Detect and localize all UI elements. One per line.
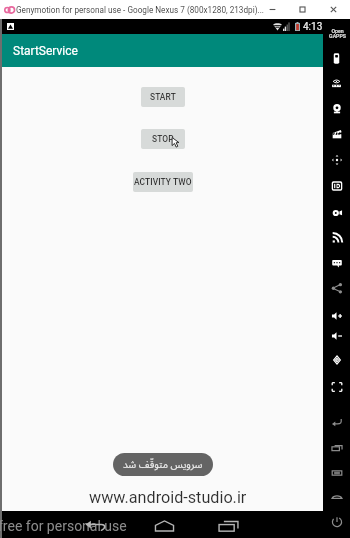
staticText: www.android-studio.ir	[89, 488, 247, 507]
button[interactable]: Move	[323, 148, 350, 172]
button[interactable]: Recent apps	[213, 511, 243, 538]
staticText: Genymotion for personal use - Google Nex…	[16, 5, 264, 15]
staticText: StartService	[13, 44, 78, 58]
button[interactable]: Close	[321, 0, 346, 19]
button[interactable]: START	[141, 87, 185, 107]
staticText: free for personal use	[0, 518, 127, 534]
button[interactable]: Battery	[323, 46, 350, 70]
button[interactable]: Share	[323, 276, 350, 300]
button[interactable]: Back	[80, 511, 110, 538]
button[interactable]: Menu	[323, 461, 350, 485]
button[interactable]: Network	[323, 226, 350, 250]
button[interactable]: ACTIVITY TWO	[133, 172, 193, 192]
button[interactable]: Fullscreen	[323, 375, 350, 399]
staticText: STOP	[152, 134, 174, 144]
button[interactable]: Volume down	[323, 324, 350, 348]
button[interactable]: Recents	[323, 436, 350, 460]
button[interactable]: Rotate	[323, 348, 350, 372]
button[interactable]: Identifiers	[323, 174, 350, 198]
button[interactable]: Screen record	[323, 122, 350, 146]
button[interactable]: Home	[149, 511, 179, 538]
staticText: START	[150, 92, 176, 102]
button[interactable]: Maximize	[290, 0, 315, 19]
button[interactable]: SMS	[323, 251, 350, 275]
staticText: Open GAPPS	[329, 28, 346, 39]
button[interactable]: Back	[323, 410, 350, 434]
button[interactable]: Volume up	[323, 304, 350, 328]
button[interactable]: Power	[323, 510, 350, 534]
staticText: ACTIVITY TWO	[134, 177, 192, 187]
button[interactable]: Video	[323, 201, 350, 225]
button[interactable]: STOP	[141, 129, 185, 149]
staticText: سرویس متوقّف شد	[123, 454, 203, 475]
button[interactable]: Home	[323, 485, 350, 509]
button[interactable]: Camera	[323, 97, 350, 121]
button[interactable]: GPS	[323, 72, 350, 96]
staticText: 4:13	[303, 21, 323, 33]
button[interactable]: Minimize	[260, 0, 285, 19]
